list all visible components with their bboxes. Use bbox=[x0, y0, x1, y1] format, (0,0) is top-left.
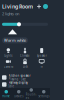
staticText: Kitchen speaker bbox=[8, 74, 30, 77]
staticText: Idle bbox=[8, 84, 14, 88]
button[interactable]: Settings bbox=[37, 88, 50, 100]
button[interactable]: Account bbox=[43, 4, 48, 9]
staticText: Living Room bbox=[2, 3, 33, 10]
staticText: Routines bbox=[26, 93, 37, 100]
staticText: Settings bbox=[38, 94, 49, 98]
button[interactable]: Speaker bbox=[33, 47, 50, 58]
button[interactable]: Lights bbox=[0, 47, 17, 58]
staticText: Lights bbox=[4, 54, 12, 57]
button[interactable]: TV bbox=[33, 58, 50, 69]
staticText: Hallway display bbox=[8, 81, 27, 84]
button[interactable]: Lock bbox=[17, 58, 33, 69]
staticText: Playing · Jazz bbox=[8, 77, 25, 81]
button[interactable]: Add device bbox=[37, 4, 41, 8]
staticText: Lock bbox=[22, 65, 27, 68]
staticText: Speaker bbox=[37, 54, 47, 57]
staticText: Climate bbox=[20, 54, 30, 57]
button[interactable]: Camera bbox=[0, 58, 17, 69]
button[interactable]: Warm white bbox=[2, 37, 28, 43]
staticText: Home bbox=[2, 94, 10, 98]
button[interactable]: Home bbox=[0, 88, 12, 100]
button[interactable]: Climate bbox=[17, 47, 33, 58]
staticText: 2 lights on bbox=[2, 11, 19, 16]
staticText: TV bbox=[40, 65, 43, 68]
button[interactable]: Hallway display bbox=[0, 81, 50, 88]
button[interactable]: Routines bbox=[25, 88, 37, 100]
button[interactable]: Kitchen speaker bbox=[0, 74, 50, 81]
staticText: Warm white bbox=[4, 38, 26, 43]
staticText: Camera bbox=[4, 65, 13, 68]
staticText: Devices bbox=[14, 94, 23, 98]
button[interactable]: Devices bbox=[12, 88, 25, 100]
